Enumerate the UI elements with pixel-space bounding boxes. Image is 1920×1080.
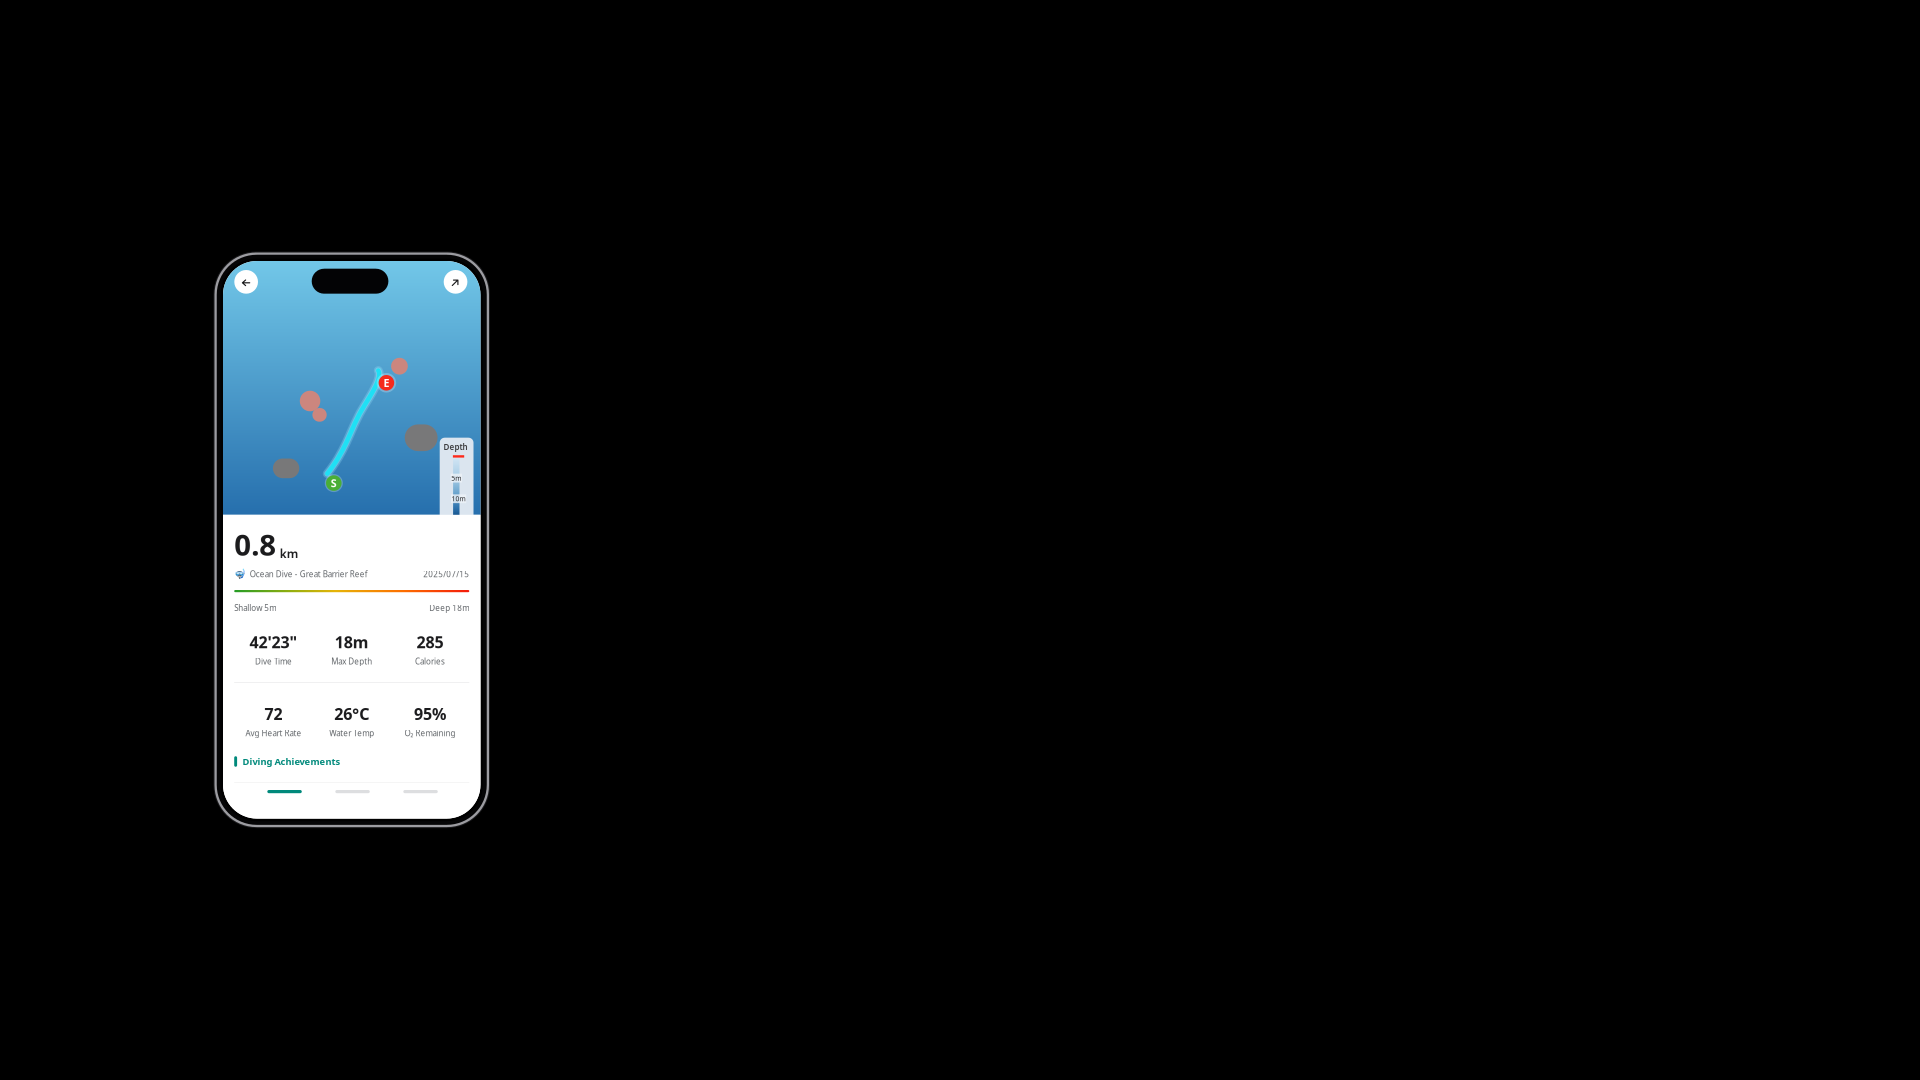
staticText: Calories <box>415 656 445 667</box>
staticText: O₂ Remaining <box>405 728 456 738</box>
staticText: 0.8 <box>234 525 276 564</box>
staticText: Diving Achievements <box>243 755 341 768</box>
button[interactable]: Back <box>234 270 258 294</box>
staticText: 95% <box>414 703 446 724</box>
staticText: 26°C <box>334 703 369 724</box>
staticText: 2025/07/15 <box>423 569 469 579</box>
staticText: Depth <box>444 441 468 452</box>
staticText: 🤿 <box>234 569 246 579</box>
staticText: 42'23" <box>249 631 297 652</box>
staticText: 72 <box>264 703 282 724</box>
staticText: Shallow 5m <box>234 602 276 613</box>
staticText: Max Depth <box>331 656 372 667</box>
staticText: Avg Heart Rate <box>245 728 301 738</box>
button[interactable]: Share <box>444 270 467 294</box>
staticText: Water Temp <box>329 728 374 738</box>
staticText: 5m <box>451 474 461 483</box>
staticText: 10m <box>452 494 466 503</box>
staticText: E <box>383 376 389 390</box>
staticText: Ocean Dive - Great Barrier Reef <box>250 569 368 579</box>
staticText: S <box>331 476 337 490</box>
staticText: Dive Time <box>255 656 292 667</box>
staticText: 285 <box>417 631 444 652</box>
staticText: Deep 18m <box>429 602 469 613</box>
staticText: km <box>280 546 299 562</box>
staticText: 18m <box>335 631 369 652</box>
